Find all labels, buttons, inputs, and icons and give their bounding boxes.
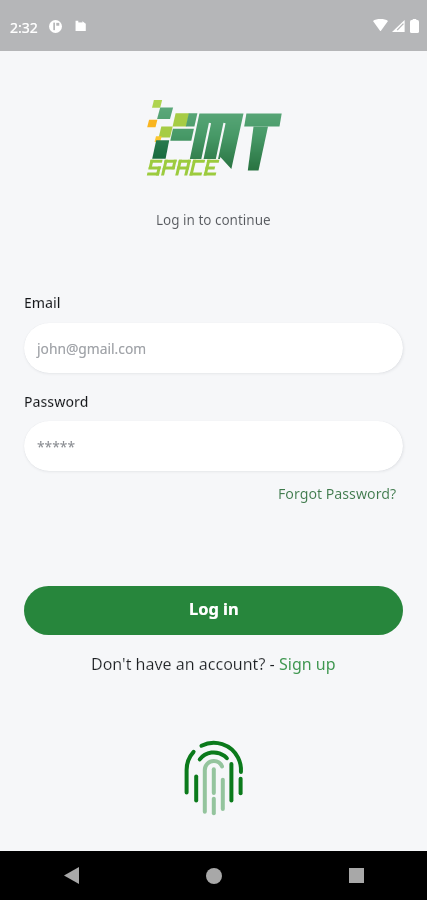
staticText: Forgot Password? [278, 484, 397, 503]
button[interactable]: Fingerprint login [171, 733, 257, 821]
staticText: 2:32 [10, 18, 38, 37]
button[interactable]: Sign up [279, 653, 336, 675]
button[interactable]: ***** [24, 421, 403, 471]
staticText: ***** [37, 437, 76, 456]
staticText: Don't have an account? - [91, 653, 279, 675]
button[interactable]: Forgot Password? [277, 482, 398, 505]
staticText: Email [24, 293, 61, 312]
button[interactable]: Log in [24, 586, 403, 635]
staticText: Log in [189, 597, 239, 619]
button[interactable]: john@gmail.com [24, 323, 403, 373]
staticText: Sign up [279, 653, 336, 675]
button[interactable]: Home [143, 851, 285, 900]
staticText: john@gmail.com [37, 339, 147, 358]
button[interactable]: Recent apps [285, 851, 427, 900]
staticText: Log in to continue [156, 211, 271, 229]
button[interactable]: Back [0, 851, 143, 900]
staticText: Password [24, 392, 89, 411]
